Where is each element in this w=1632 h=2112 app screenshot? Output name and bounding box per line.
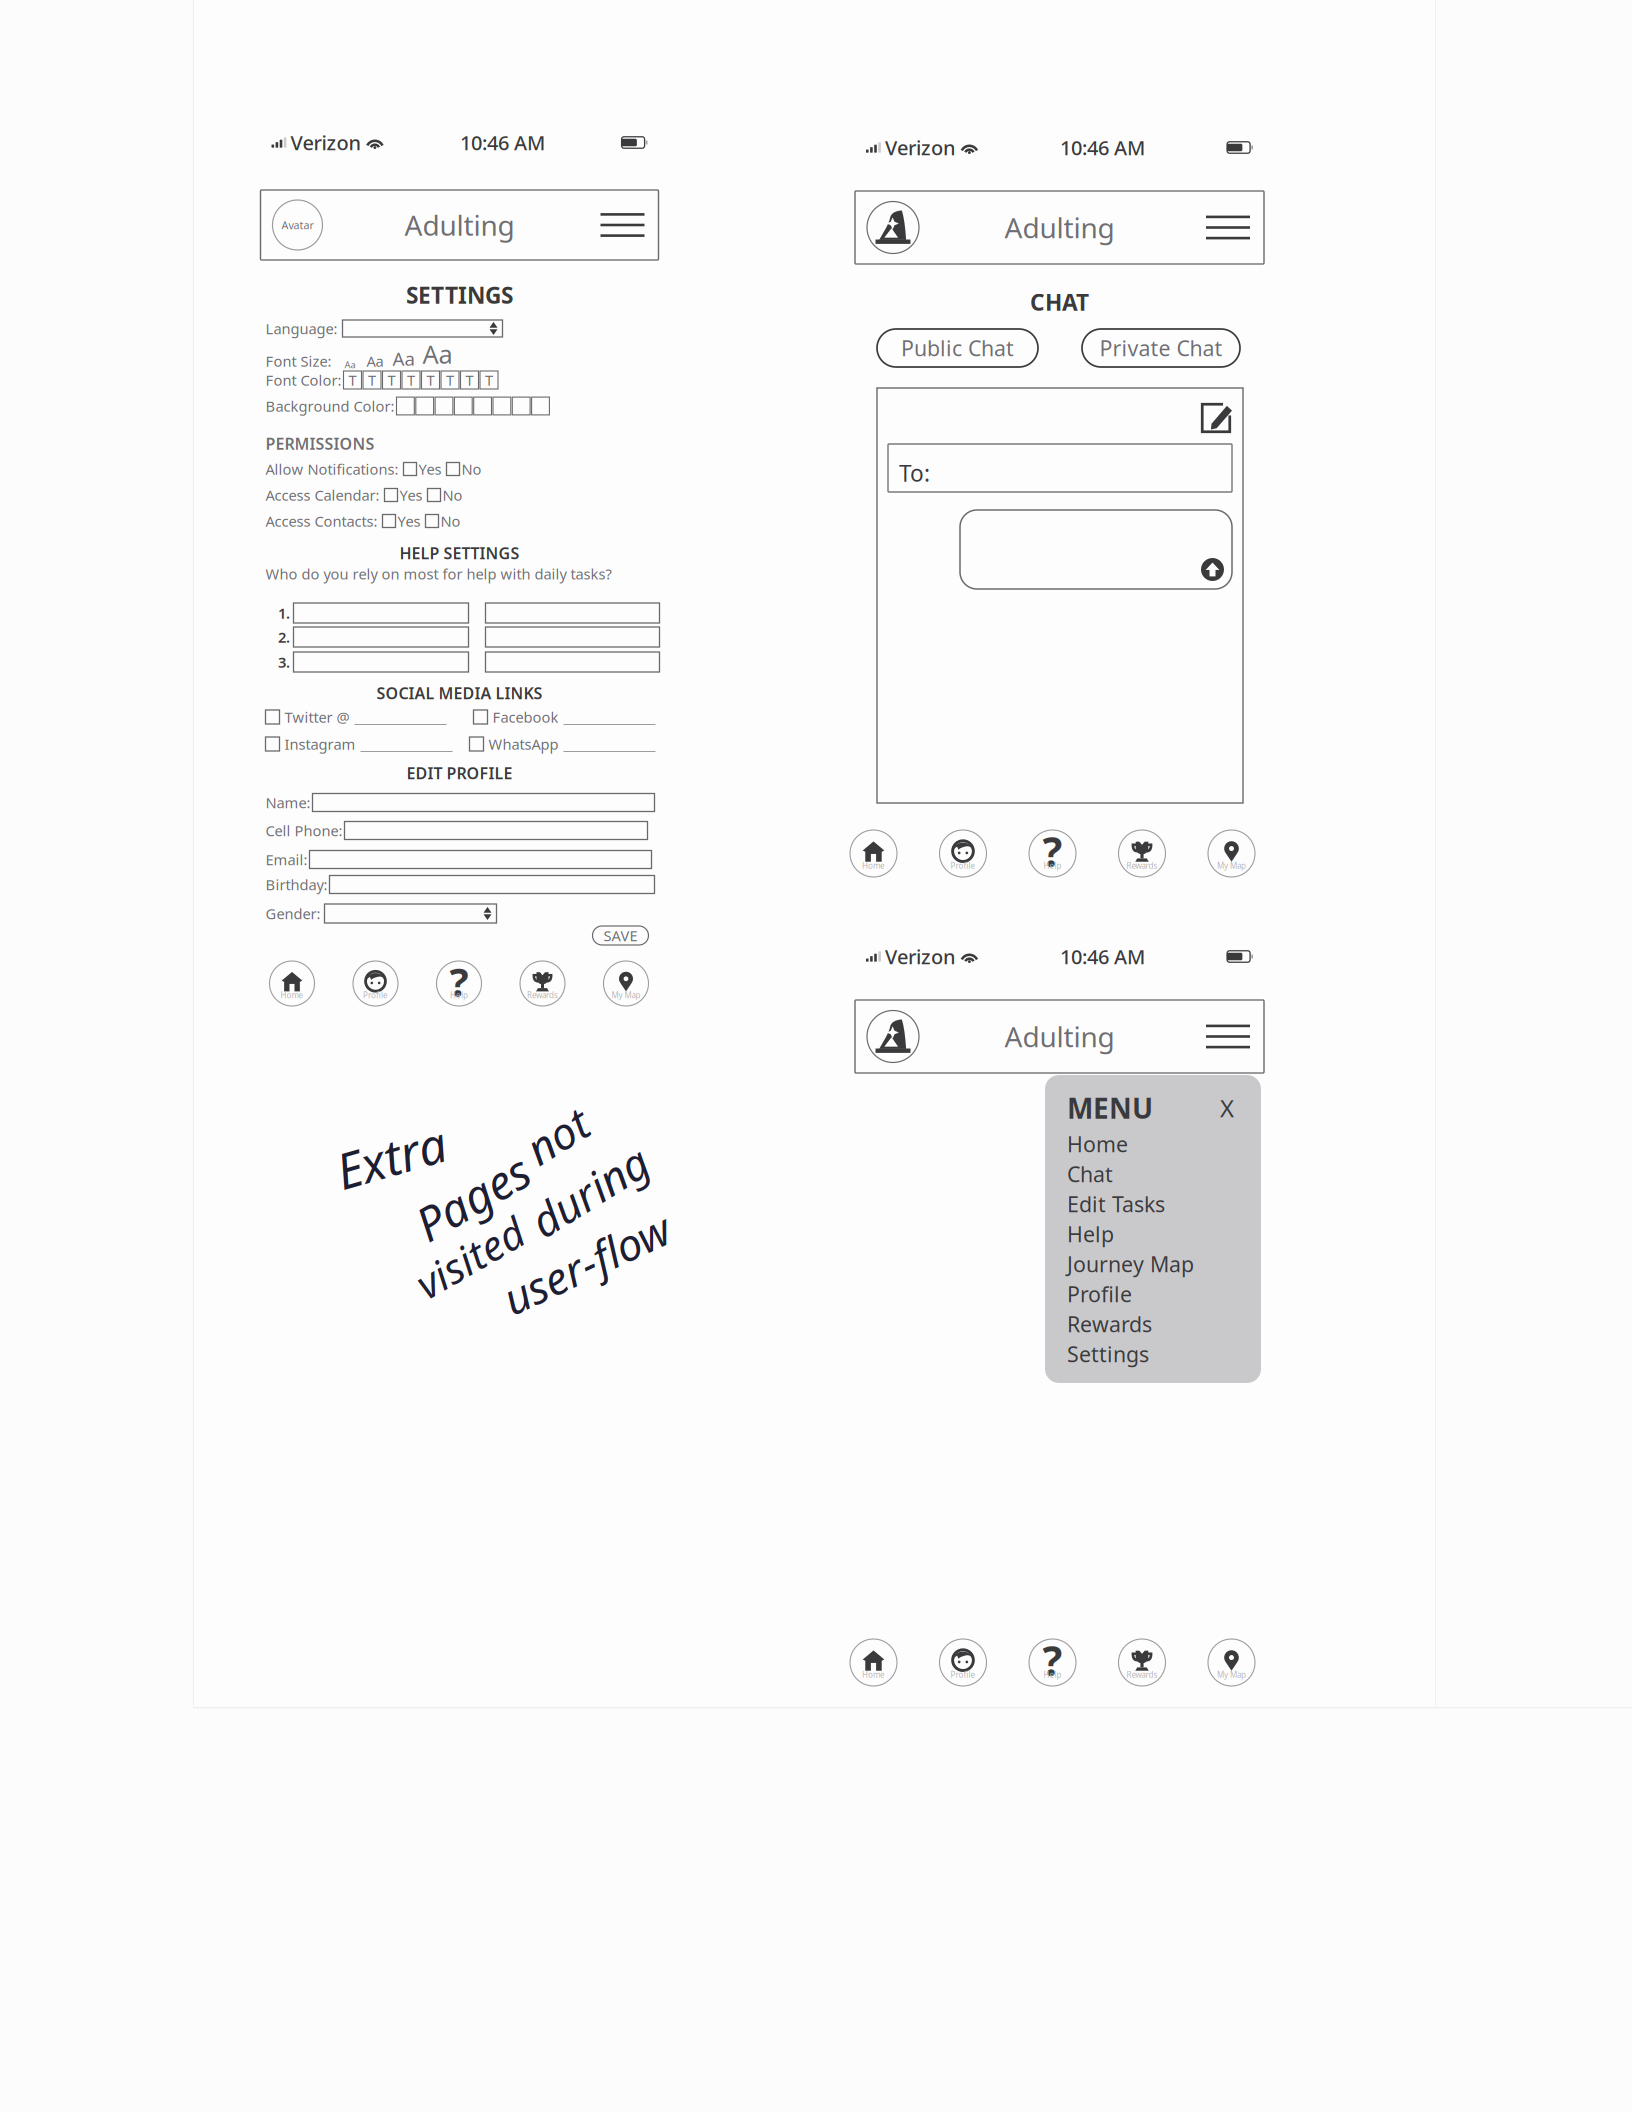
button[interactable]: Profile: [1067, 1279, 1239, 1309]
staticText: Journey Map: [1067, 1250, 1194, 1278]
button[interactable]: Aa: [392, 346, 414, 371]
button[interactable]: No: [425, 511, 460, 531]
staticText: Extra: [335, 1124, 447, 1189]
button[interactable]: Private Chat: [1082, 329, 1240, 367]
button[interactable]: Profile: [855, 1010, 919, 1062]
button[interactable]: Rewards: [1118, 1639, 1165, 1686]
staticText: during: [525, 1162, 654, 1220]
button[interactable]: Aa: [344, 358, 355, 371]
staticText: Yes: [397, 511, 420, 531]
staticText: Avatar: [281, 218, 313, 232]
staticText: ?: [1042, 824, 1062, 879]
button[interactable]: T: [421, 371, 439, 389]
button[interactable]: Yes: [382, 511, 420, 531]
button[interactable]: Profile: [260, 200, 322, 250]
staticText: Home: [862, 1669, 885, 1680]
button[interactable]: Instagram: [265, 734, 452, 754]
button[interactable]: Aa: [422, 337, 452, 371]
staticText: 10:46 AM: [460, 129, 545, 156]
button[interactable]: [512, 397, 530, 415]
staticText: user-flow: [497, 1234, 676, 1292]
staticText: CHAT: [1030, 287, 1089, 317]
button[interactable]: Adulting: [855, 191, 1264, 264]
staticText: Cell Phone:: [265, 821, 342, 840]
button[interactable]: Profile: [939, 830, 986, 877]
staticText: Profile: [1067, 1280, 1132, 1308]
button[interactable]: Aa: [366, 351, 383, 371]
button[interactable]: ?: [436, 961, 481, 1006]
staticText: T: [407, 370, 415, 390]
button[interactable]: T: [460, 371, 478, 389]
button[interactable]: My Map: [1208, 830, 1255, 877]
button[interactable]: WhatsApp: [469, 734, 655, 754]
button[interactable]: T: [402, 371, 420, 389]
button[interactable]: [532, 397, 549, 415]
staticText: My Map: [1217, 860, 1246, 871]
button[interactable]: Home: [1067, 1129, 1239, 1159]
button[interactable]: [416, 397, 434, 415]
staticText: 10:46 AM: [1060, 134, 1145, 161]
button[interactable]: My Map: [603, 961, 648, 1006]
button[interactable]: Close menu: [1215, 1096, 1239, 1120]
button[interactable]: [474, 397, 491, 415]
button[interactable]: ?: [1029, 1639, 1076, 1686]
button[interactable]: Home: [850, 1639, 897, 1686]
staticText: Access Calendar:: [265, 485, 379, 505]
staticText: Yes: [399, 485, 422, 505]
button[interactable]: Menu: [1206, 1015, 1264, 1058]
staticText: Name:: [265, 793, 310, 812]
button[interactable]: T: [441, 371, 459, 389]
button[interactable]: Menu: [1206, 206, 1264, 249]
button[interactable]: SAVE: [592, 926, 648, 945]
button[interactable]: Settings: [1067, 1339, 1239, 1369]
staticText: Home: [862, 860, 885, 871]
staticText: Rewards: [527, 990, 558, 1000]
button[interactable]: Adulting: [260, 190, 658, 260]
button[interactable]: Profile: [855, 201, 919, 253]
staticText: Facebook: [492, 707, 558, 727]
staticText: Rewards: [1126, 860, 1157, 871]
staticText: Rewards: [1126, 1669, 1157, 1680]
button[interactable]: T: [363, 371, 381, 389]
button[interactable]: T: [343, 371, 361, 389]
button[interactable]: Yes: [384, 485, 422, 505]
staticText: ?: [1042, 1633, 1062, 1688]
staticText: Profile: [950, 860, 975, 871]
staticText: 10:46 AM: [1060, 943, 1145, 970]
button[interactable]: [435, 397, 453, 415]
button[interactable]: No: [427, 485, 462, 505]
button[interactable]: Home: [850, 830, 897, 877]
button[interactable]: Menu: [600, 203, 658, 247]
button[interactable]: Help: [1067, 1219, 1239, 1249]
button[interactable]: Journey Map: [1067, 1249, 1239, 1279]
button[interactable]: Chat: [1067, 1159, 1239, 1189]
button[interactable]: Rewards: [520, 961, 565, 1006]
button[interactable]: Home: [269, 961, 314, 1006]
staticText: SETTINGS: [406, 280, 513, 310]
button[interactable]: T: [382, 371, 400, 389]
button[interactable]: Rewards: [1067, 1309, 1239, 1339]
button[interactable]: Rewards: [1118, 830, 1165, 877]
staticText: T: [348, 370, 356, 390]
button[interactable]: Adulting: [855, 1000, 1264, 1073]
button[interactable]: Twitter @: [265, 707, 446, 727]
button[interactable]: [396, 397, 414, 415]
button[interactable]: Yes: [403, 459, 441, 479]
button[interactable]: [454, 397, 472, 415]
button[interactable]: ?: [1029, 830, 1076, 877]
staticText: Verizon: [885, 134, 956, 161]
button[interactable]: My Map: [1208, 1639, 1255, 1686]
button[interactable]: Public Chat: [877, 329, 1038, 367]
button[interactable]: T: [480, 371, 498, 389]
staticText: T: [485, 370, 493, 390]
staticText: HELP SETTINGS: [399, 542, 519, 564]
staticText: Access Contacts:: [265, 511, 377, 531]
button[interactable]: Compose message: [1200, 402, 1232, 434]
button[interactable]: No: [446, 459, 481, 479]
button[interactable]: Facebook: [473, 707, 655, 727]
button[interactable]: Profile: [353, 961, 398, 1006]
staticText: Public Chat: [901, 334, 1014, 362]
button[interactable]: Profile: [939, 1639, 986, 1686]
button[interactable]: [493, 397, 511, 415]
button[interactable]: Edit Tasks: [1067, 1189, 1239, 1219]
